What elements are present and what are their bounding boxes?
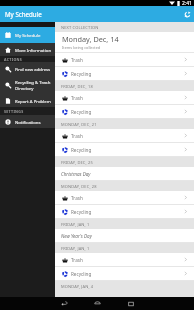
button[interactable]: Recycling	[55, 105, 194, 119]
staticText: Trash	[71, 257, 83, 263]
button[interactable]: Notifications	[0, 115, 55, 128]
staticText: My Schedule	[5, 10, 42, 18]
button[interactable]: Recycling	[55, 67, 194, 81]
button[interactable]: Recycling & Trash Directory	[0, 76, 55, 94]
staticText: Recycling & Trash Directory	[15, 79, 51, 91]
staticText: MONDAY, DEC, 21	[61, 122, 97, 127]
staticText: Monday, Dec, 14	[62, 34, 119, 44]
staticText: My Schedule	[15, 32, 41, 38]
staticText: Report A Problem	[15, 98, 51, 104]
staticText: MONDAY, DEC, 28	[61, 184, 97, 189]
button[interactable]: Find new address	[0, 62, 55, 76]
staticText: FRIDAY, JAN, 1	[61, 246, 90, 251]
staticText: New Year's Day	[61, 233, 92, 239]
staticText: Trash	[71, 57, 83, 63]
staticText: Recycling	[71, 147, 92, 153]
button[interactable]: Report A Problem	[0, 94, 55, 107]
staticText: Find new address	[15, 66, 51, 72]
button[interactable]: My Schedule	[0, 27, 55, 43]
button[interactable]: Trash	[55, 53, 194, 67]
staticText: MONDAY, JAN, 4	[61, 284, 94, 289]
button[interactable]: More Information	[0, 43, 55, 56]
staticText: SETTINGS	[4, 109, 24, 114]
staticText: NEXT COLLECTION	[61, 25, 99, 30]
button[interactable]: Recycling	[55, 205, 194, 219]
staticText: More Information	[15, 47, 52, 53]
staticText: Recycling	[71, 71, 92, 77]
button[interactable]: Trash	[55, 253, 194, 267]
button[interactable]: Trash	[55, 191, 194, 205]
staticText: Trash	[71, 95, 83, 101]
button[interactable]: Recycling	[55, 143, 194, 157]
button[interactable]: Back	[48, 297, 81, 310]
staticText: 2:41	[182, 0, 192, 6]
staticText: FRIDAY, JAN, 1	[61, 222, 90, 227]
staticText: Trash	[71, 195, 83, 201]
button[interactable]: Recents	[114, 297, 147, 310]
button[interactable]: Recycling	[55, 267, 194, 281]
button[interactable]: Trash	[55, 129, 194, 143]
staticText: Recycling	[71, 109, 92, 115]
staticText: Recycling	[71, 271, 92, 277]
button[interactable]: Home	[81, 297, 114, 310]
staticText: FRIDAY, DEC, 18	[61, 84, 93, 89]
staticText: FRIDAY, DEC, 25	[61, 160, 93, 165]
staticText: ACTIONS	[4, 57, 23, 62]
staticText: Notifications	[15, 119, 41, 125]
staticText: Recycling	[71, 209, 92, 215]
staticText: Trash	[71, 133, 83, 139]
staticText: Christmas Day	[61, 171, 91, 177]
staticText: Items being collected	[62, 45, 101, 50]
button[interactable]: Trash	[55, 91, 194, 105]
button[interactable]: Refresh	[180, 7, 194, 21]
